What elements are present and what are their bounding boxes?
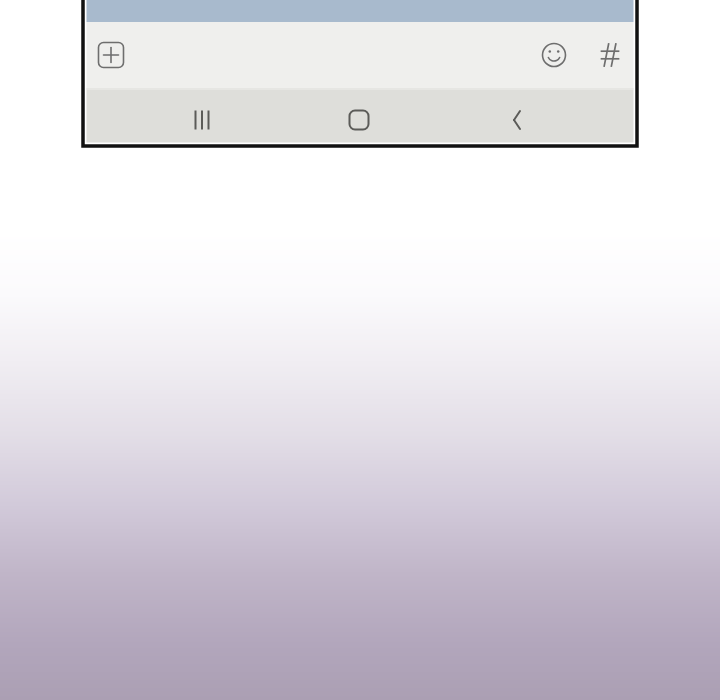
button[interactable]: Add attachment (92, 36, 130, 74)
button[interactable]: Recents (182, 100, 222, 140)
button[interactable]: Hashtag (592, 37, 628, 73)
button[interactable]: Home (339, 100, 379, 140)
button[interactable]: Back (497, 100, 537, 140)
button[interactable]: Emoji (536, 37, 572, 73)
